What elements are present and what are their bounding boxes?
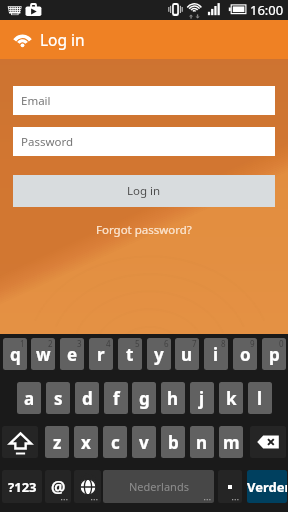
button[interactable]: i (204, 338, 228, 370)
staticText: ?123 (8, 478, 37, 496)
staticText: Password (21, 134, 74, 150)
staticText: Verder (247, 478, 287, 496)
staticText: Email (21, 93, 51, 109)
staticText: b (168, 431, 179, 454)
button[interactable]: o (233, 338, 257, 370)
staticText: e (67, 343, 78, 366)
staticText: f (113, 387, 120, 410)
staticText: h (167, 387, 179, 410)
staticText: v (139, 431, 149, 454)
button[interactable]: Log in (13, 175, 275, 207)
button[interactable]: Verder (247, 470, 287, 503)
staticText: r (97, 343, 105, 366)
button[interactable]: y (147, 338, 171, 370)
staticText: x (81, 431, 91, 454)
button[interactable]: x (74, 426, 98, 458)
staticText: Nederlands (129, 479, 189, 494)
staticText: j (199, 387, 205, 410)
button[interactable]: c (103, 426, 127, 458)
button[interactable]: Nederlands (103, 470, 214, 503)
button[interactable]: e (60, 338, 84, 370)
staticText: i (213, 343, 219, 366)
staticText: y (154, 343, 164, 366)
button[interactable]: Email (13, 86, 275, 115)
staticText: Log in (40, 29, 85, 50)
button[interactable] (218, 470, 242, 503)
button[interactable]: t (118, 338, 142, 370)
button[interactable]: k (219, 382, 243, 414)
staticText: p (269, 343, 280, 366)
button[interactable]: j (190, 382, 214, 414)
button[interactable]: s (46, 382, 70, 414)
button[interactable]: Shift (2, 426, 38, 458)
staticText: d (82, 387, 93, 410)
button[interactable]: f (104, 382, 128, 414)
button[interactable]: n (190, 426, 214, 458)
staticText: t (126, 343, 134, 366)
staticText: 6 (164, 338, 169, 349)
staticText: k (226, 387, 237, 410)
button[interactable]: g (132, 382, 156, 414)
staticText: 9 (250, 338, 255, 349)
button[interactable]: m (219, 426, 243, 458)
button[interactable]: d (75, 382, 99, 414)
staticText: Log in (127, 183, 161, 199)
staticText: 7 (192, 338, 197, 349)
button[interactable]: @ (45, 470, 71, 503)
button[interactable]: Delete (250, 426, 286, 458)
button[interactable]: a (17, 382, 41, 414)
button[interactable]: w (31, 338, 55, 370)
staticText: m (223, 431, 240, 454)
staticText: n (196, 431, 208, 454)
staticText: 16:00 (250, 1, 284, 19)
staticText: 8 (221, 338, 226, 349)
staticText: c (111, 431, 120, 454)
staticText: a (24, 387, 35, 410)
staticText: o (240, 343, 251, 366)
staticText: 4 (106, 338, 111, 349)
staticText: 5 (135, 338, 140, 349)
staticText: s (54, 387, 63, 410)
button[interactable]: p (262, 338, 286, 370)
staticText: 0 (279, 338, 284, 349)
staticText: g (139, 387, 150, 410)
staticText: l (257, 387, 263, 410)
staticText: 3 (77, 338, 82, 349)
button[interactable]: q (3, 338, 27, 370)
button[interactable]: h (161, 382, 185, 414)
staticText: u (181, 343, 193, 366)
button[interactable]: z (45, 426, 69, 458)
staticText: 1 (20, 338, 25, 349)
staticText: @ (51, 476, 66, 498)
button[interactable]: l (248, 382, 272, 414)
staticText: z (53, 431, 62, 454)
button[interactable]: ?123 (2, 470, 42, 503)
button[interactable]: Password (13, 127, 275, 156)
button[interactable]: b (161, 426, 185, 458)
button[interactable]: Forgot password? (96, 222, 192, 238)
staticText: w (36, 343, 51, 366)
button[interactable]: v (132, 426, 156, 458)
staticText: q (10, 343, 21, 366)
button[interactable]: Change language (74, 470, 101, 503)
button[interactable]: r (89, 338, 113, 370)
button[interactable]: u (175, 338, 199, 370)
staticText: 2 (48, 338, 53, 349)
